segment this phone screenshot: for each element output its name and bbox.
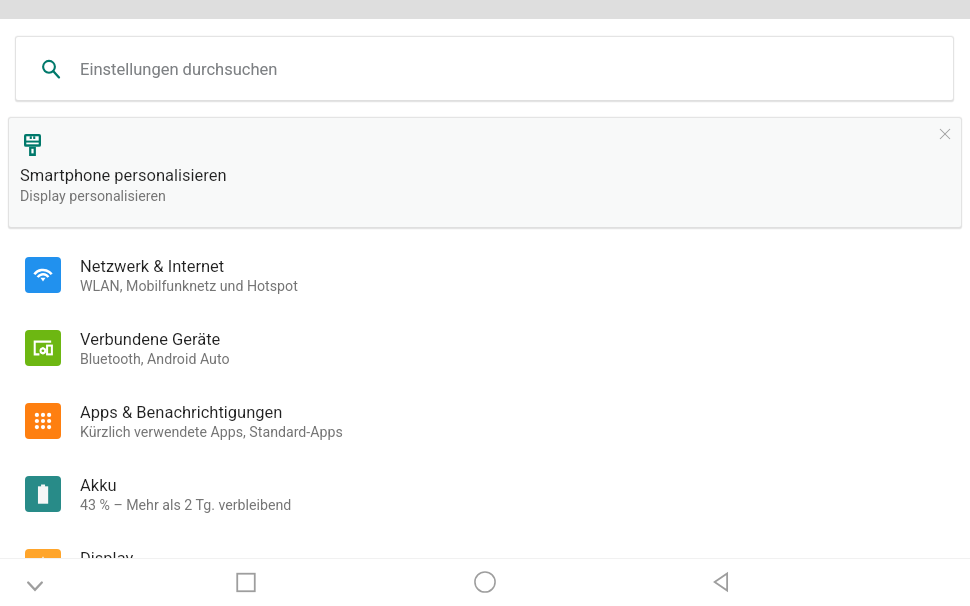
button[interactable]: Startbildschirm: [461, 558, 509, 606]
button[interactable]: Display: [0, 531, 970, 603]
staticText: Kürzlich verwendete Apps, Standard-Apps: [80, 424, 343, 441]
button[interactable]: Smartphone personalisieren: [7, 116, 963, 230]
staticText: Apps & Benachrichtigungen: [80, 403, 283, 422]
staticText: Bluetooth, Android Auto: [80, 351, 230, 368]
staticText: Smartphone personalisieren: [20, 166, 227, 185]
button[interactable]: Schließen: [930, 119, 960, 149]
staticText: 43 % – Mehr als 2 Tg. verbleibend: [80, 497, 292, 514]
button[interactable]: Tastatur ausblenden: [11, 558, 59, 606]
staticText: Display: [80, 549, 134, 568]
staticText: Einstellungen durchsuchen: [80, 60, 278, 79]
button[interactable]: Letzte Apps: [222, 558, 270, 606]
button[interactable]: Einstellungen durchsuchen: [14, 35, 955, 103]
staticText: Verbundene Geräte: [80, 330, 221, 349]
button[interactable]: Apps & Benachrichtigungen: [0, 385, 970, 457]
button[interactable]: Verbundene Geräte: [0, 312, 970, 384]
button[interactable]: Netzwerk & Internet: [0, 239, 970, 311]
staticText: Netzwerk & Internet: [80, 257, 225, 276]
button[interactable]: Akku: [0, 458, 970, 530]
staticText: Akku: [80, 476, 117, 495]
button[interactable]: Zurück: [697, 558, 745, 606]
staticText: Display personalisieren: [20, 188, 166, 205]
staticText: WLAN, Mobilfunknetz und Hotspot: [80, 278, 298, 295]
